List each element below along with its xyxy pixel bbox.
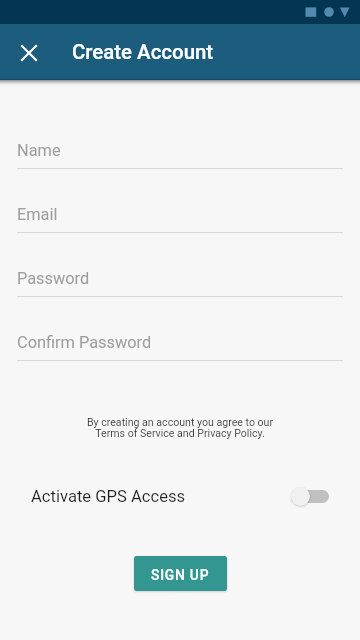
staticText: Name <box>17 141 61 160</box>
button[interactable]: Email <box>17 195 343 233</box>
staticText: Password <box>17 269 90 288</box>
staticText: By creating an account you agree to our … <box>0 416 360 439</box>
staticText: Create Account <box>72 40 214 64</box>
button[interactable]: Confirm Password <box>17 323 343 361</box>
button[interactable]: Name <box>17 131 343 169</box>
button[interactable]: Activate GPS Access <box>31 483 329 509</box>
staticText: Confirm Password <box>17 333 152 352</box>
staticText: Activate GPS Access <box>31 487 186 506</box>
staticText: SIGN UP <box>151 567 210 583</box>
button[interactable]: Password <box>17 259 343 297</box>
button[interactable]: SIGN UP <box>134 556 227 591</box>
staticText: Email <box>17 205 58 224</box>
button[interactable]: Close <box>13 37 45 69</box>
